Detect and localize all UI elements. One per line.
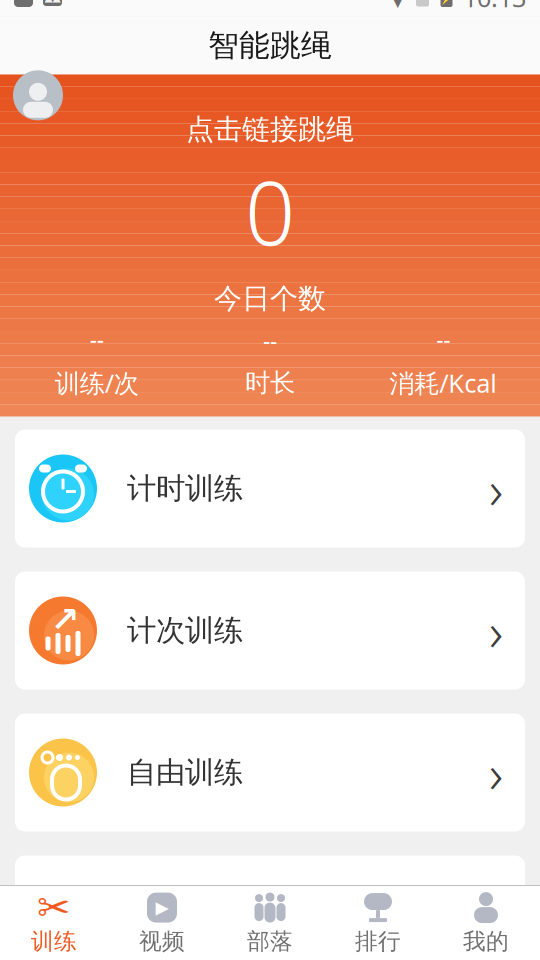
button[interactable]: 自由训练	[15, 713, 525, 831]
button[interactable]: 点击链接跳绳	[186, 112, 354, 147]
staticText: ⚡	[439, 0, 454, 4]
button[interactable]: ▶	[108, 886, 216, 960]
staticText: 今日个数	[214, 282, 326, 316]
staticText: ›	[489, 453, 503, 524]
staticText: 自由训练	[127, 754, 243, 790]
staticText: ›	[489, 595, 503, 666]
staticText: --	[436, 324, 450, 354]
button[interactable]: ✂	[0, 886, 108, 960]
staticText: 排行	[355, 928, 401, 955]
staticText: 计时训练	[127, 470, 243, 506]
staticText: ▼	[389, 0, 406, 10]
staticText: ▶	[155, 898, 168, 917]
staticText: 视频	[139, 928, 185, 955]
staticText: ✂	[37, 885, 71, 930]
staticText: 时长	[245, 367, 295, 398]
staticText: 训练	[31, 928, 77, 955]
staticText: --	[263, 325, 277, 355]
staticText: 消耗/Kcal	[389, 366, 497, 400]
staticText: 10:13	[463, 0, 526, 14]
button[interactable]: 我的	[432, 886, 540, 960]
staticText: 智能跳绳	[208, 27, 332, 64]
staticText: 我的	[463, 928, 509, 955]
staticText: 计次训练	[127, 612, 243, 648]
staticText: 训练/次	[55, 366, 139, 400]
button[interactable]: Profile	[0, 70, 540, 120]
staticText: ›	[489, 737, 503, 808]
staticText: --	[90, 324, 104, 354]
staticText: 点击链接跳绳	[186, 112, 354, 147]
staticText: ↗	[50, 600, 79, 639]
staticText: ▲▲	[44, 0, 60, 3]
button[interactable]: ↗	[15, 571, 525, 689]
staticText: 部落	[247, 928, 293, 955]
staticText: 0	[245, 153, 295, 270]
button[interactable]: 部落	[216, 886, 324, 960]
button[interactable]: 计时训练	[15, 429, 525, 547]
button[interactable]: 排行	[324, 886, 432, 960]
